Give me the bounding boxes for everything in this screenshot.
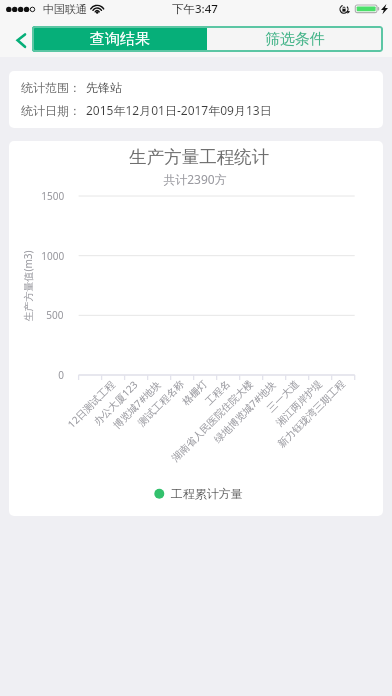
staticText: 筛选条件 <box>265 30 325 49</box>
button[interactable]: 返回 <box>0 20 32 57</box>
button[interactable]: 查询结果 <box>32 26 207 52</box>
button[interactable]: 图例：工程累计方量 <box>149 481 249 503</box>
staticText: 统计日期： <box>21 103 81 118</box>
staticText: 2015年12月01日-2017年09月13日 <box>86 102 272 118</box>
staticText: 先锋站 <box>86 80 122 95</box>
staticText: 查询结果 <box>90 30 150 49</box>
button[interactable]: 筛选条件 <box>207 26 383 52</box>
staticText: 统计范围： <box>21 80 81 95</box>
